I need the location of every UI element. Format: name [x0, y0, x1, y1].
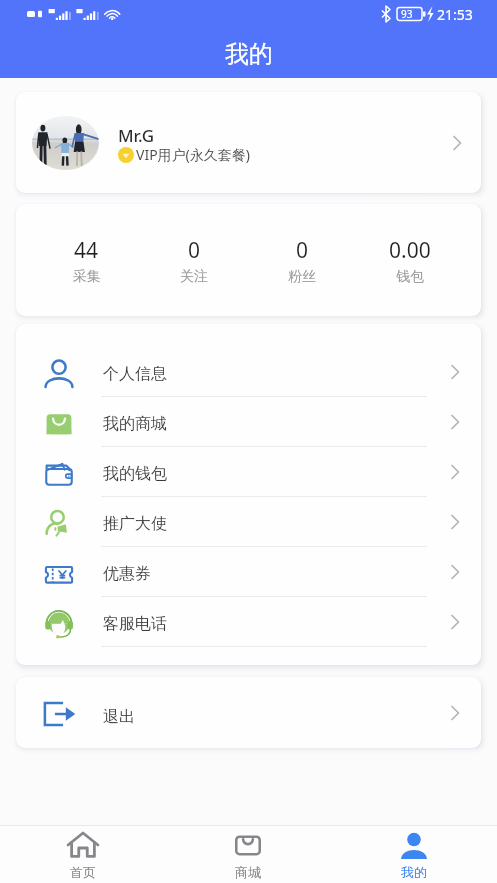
- button[interactable]: 我的商城: [16, 397, 481, 447]
- staticText: 44: [74, 236, 99, 265]
- button[interactable]: 推广大使: [16, 497, 481, 547]
- staticText: 21:53: [437, 5, 473, 24]
- staticText: 钱包: [396, 268, 424, 286]
- button[interactable]: 0: [140, 204, 248, 316]
- button[interactable]: 0.00: [356, 204, 464, 316]
- staticText: 我的商城: [103, 414, 167, 434]
- staticText: 个人信息: [103, 364, 167, 384]
- button[interactable]: 我的钱包: [16, 447, 481, 497]
- staticText: 我的钱包: [103, 464, 167, 484]
- staticText: 我的: [225, 39, 273, 69]
- staticText: VIP用户(永久套餐): [136, 145, 251, 164]
- staticText: 0: [188, 236, 201, 265]
- staticText: 93: [401, 7, 413, 21]
- staticText: 0.00: [389, 236, 431, 265]
- staticText: 商城: [235, 864, 261, 880]
- staticText: 关注: [180, 268, 208, 286]
- button[interactable]: 0: [248, 204, 356, 316]
- button[interactable]: 44: [33, 204, 140, 316]
- staticText: 我的: [401, 864, 427, 880]
- button[interactable]: 个人信息: [16, 347, 481, 397]
- staticText: 0: [296, 236, 309, 265]
- button[interactable]: Mr.G: [16, 92, 481, 193]
- button[interactable]: 首页: [0, 826, 165, 883]
- staticText: 退出: [103, 707, 135, 727]
- staticText: 采集: [73, 268, 101, 286]
- staticText: 首页: [70, 864, 96, 880]
- staticText: 粉丝: [288, 268, 316, 286]
- button[interactable]: 我的: [331, 826, 497, 883]
- staticText: 客服电话: [103, 614, 167, 634]
- staticText: Mr.G: [118, 124, 155, 147]
- staticText: 推广大使: [103, 514, 167, 534]
- button[interactable]: 退出: [16, 677, 481, 748]
- button[interactable]: 商城: [165, 826, 331, 883]
- button[interactable]: 客服电话: [16, 597, 481, 647]
- staticText: 优惠券: [103, 564, 151, 584]
- button[interactable]: 优惠券: [16, 547, 481, 597]
